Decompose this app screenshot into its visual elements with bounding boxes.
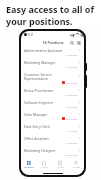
button[interactable]: Profile: [68, 159, 84, 171]
button[interactable]: Saved: [52, 159, 68, 171]
staticText: Easy access to all of: [6, 3, 94, 15]
staticText: 18 Onsite: [66, 65, 78, 68]
button[interactable]: Positions: [21, 159, 36, 171]
button[interactable]: Customer Service Representative: [21, 70, 84, 86]
button[interactable]: Administrative Assistant: [21, 46, 84, 58]
staticText: Sales Manager: [24, 112, 78, 117]
staticText: Saved: [57, 166, 64, 169]
staticText: Marketing Manager: [24, 60, 78, 65]
staticText: Marketing Designer: [24, 148, 78, 153]
staticText: Positions: [24, 166, 34, 169]
staticText: 11 Onsite: [66, 129, 78, 132]
button[interactable]: Filter: [76, 40, 81, 45]
button[interactable]: Software Engineer: [21, 98, 84, 110]
button[interactable]: Data Entry Clerk: [21, 122, 84, 134]
staticText: Nurse Practitioner: [24, 88, 78, 93]
staticText: 24 Onsite: [66, 53, 78, 56]
staticText: Software Engineer: [24, 100, 78, 105]
staticText: Customer Service Representative: [24, 72, 78, 81]
staticText: your positions.: [6, 15, 73, 27]
staticText: 22 Onsite: [66, 117, 78, 120]
button[interactable]: Search: [69, 40, 74, 45]
button[interactable]: Sales Manager: [21, 110, 84, 122]
staticText: Office Assistant: [24, 136, 78, 141]
button[interactable]: Marketing Manager: [21, 58, 84, 70]
staticText: 9:41: [28, 33, 34, 37]
staticText: Home: [41, 166, 48, 169]
button[interactable]: Office Assistant: [21, 134, 84, 146]
button[interactable]: Home: [36, 159, 52, 171]
staticText: 36 Onsite: [66, 105, 78, 108]
staticText: 16 Onsite: [66, 141, 78, 144]
button[interactable]: Marketing Designer: [21, 146, 84, 158]
staticText: 14 Positions: [42, 40, 64, 45]
staticText: Profile: [73, 166, 80, 169]
staticText: 30 Remote: [65, 153, 78, 156]
staticText: Data Entry Clerk: [24, 124, 78, 129]
staticText: Administrative Assistant: [24, 48, 78, 53]
staticText: 20 Remote: [65, 93, 78, 96]
staticText: 12 Onsite: [66, 81, 78, 84]
button[interactable]: Nurse Practitioner: [21, 86, 84, 98]
